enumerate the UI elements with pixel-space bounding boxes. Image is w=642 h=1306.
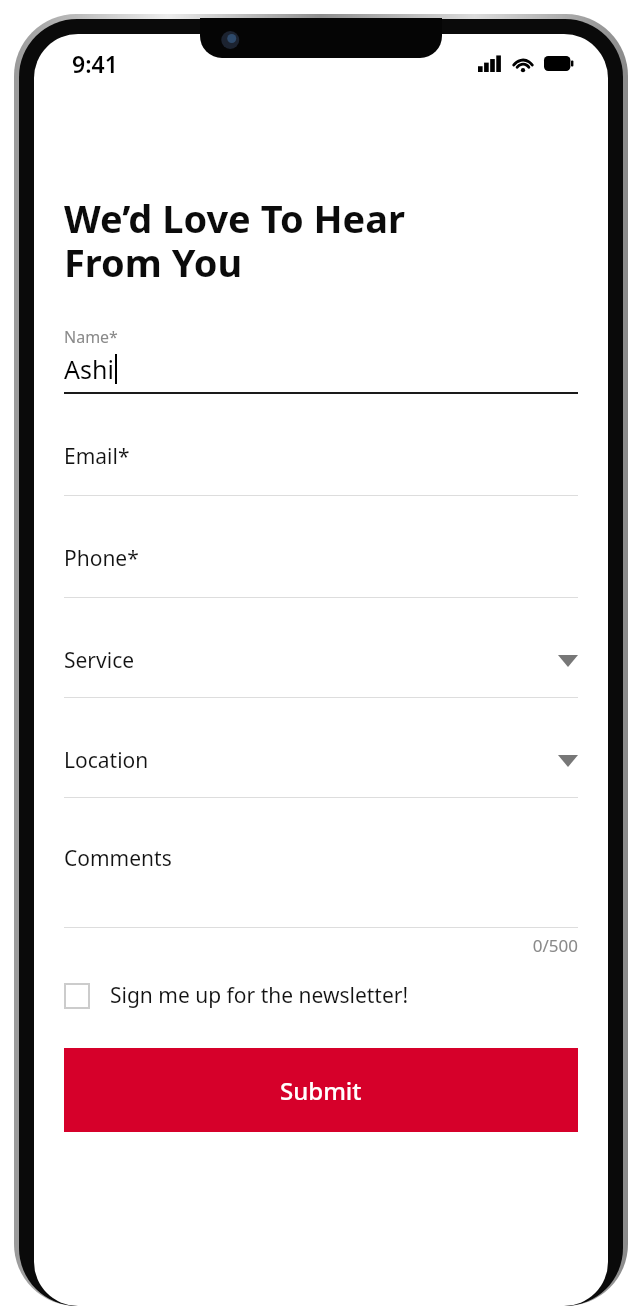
button[interactable]: Service bbox=[34, 624, 608, 698]
staticText: We’d Love To Hear From You bbox=[64, 192, 406, 288]
staticText: Service bbox=[64, 646, 135, 675]
other: Open Service dropdown bbox=[558, 655, 578, 667]
staticText: Email* bbox=[64, 442, 130, 471]
staticText: Submit bbox=[280, 1074, 362, 1107]
staticText: Location bbox=[64, 746, 149, 775]
button[interactable]: Submit bbox=[64, 1048, 578, 1132]
staticText: Comments bbox=[64, 844, 172, 873]
button[interactable]: Comments bbox=[34, 824, 608, 928]
staticText: 0/500 bbox=[64, 934, 578, 957]
staticText: Name* bbox=[64, 326, 118, 348]
button[interactable]: Name* bbox=[34, 326, 608, 394]
other: Open Location dropdown bbox=[558, 755, 578, 767]
staticText: 9:41 bbox=[72, 48, 118, 79]
staticText: Sign me up for the newsletter! bbox=[110, 981, 409, 1010]
button[interactable]: Sign me up for the newsletter! bbox=[34, 977, 608, 1014]
button[interactable]: Phone* bbox=[34, 522, 608, 598]
staticText: Ashi bbox=[64, 352, 114, 386]
button[interactable]: Location bbox=[34, 724, 608, 798]
staticText: Phone* bbox=[64, 544, 139, 573]
button[interactable]: Email* bbox=[34, 420, 608, 496]
